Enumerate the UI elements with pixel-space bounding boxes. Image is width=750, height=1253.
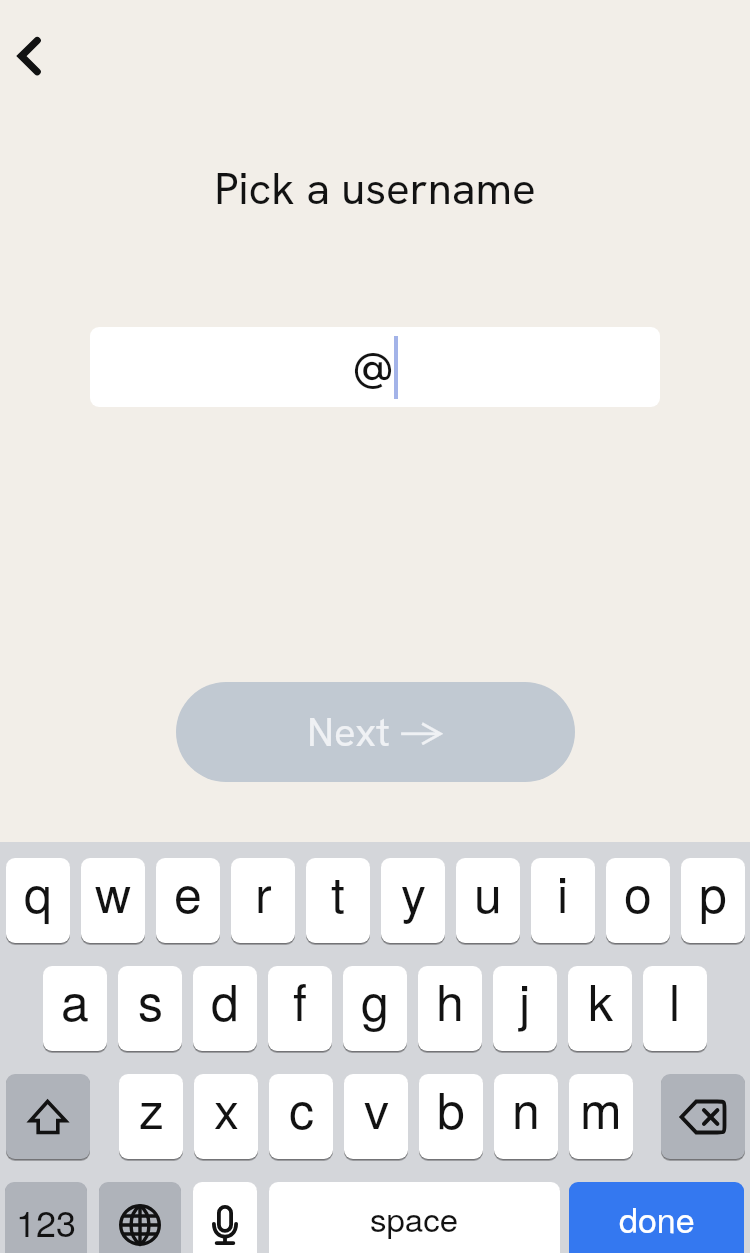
button[interactable]: u: [456, 858, 520, 943]
staticText: k: [588, 966, 613, 1036]
staticText: g: [361, 966, 389, 1036]
staticText: @: [352, 336, 394, 399]
other: Change keyboard: [119, 1204, 161, 1246]
staticText: space: [370, 1194, 459, 1241]
other: Backspace: [679, 1099, 727, 1135]
staticText: z: [139, 1074, 164, 1144]
button[interactable]: @: [90, 327, 660, 407]
button[interactable]: q: [6, 858, 70, 943]
staticText: u: [474, 858, 502, 928]
staticText: done: [619, 1194, 695, 1243]
button[interactable]: t: [306, 858, 370, 943]
staticText: v: [364, 1074, 389, 1144]
button[interactable]: d: [193, 966, 257, 1051]
button[interactable]: Back: [0, 0, 60, 112]
button[interactable]: k: [568, 966, 632, 1051]
staticText: y: [401, 858, 426, 928]
staticText: o: [624, 858, 652, 928]
button[interactable]: 123: [5, 1182, 87, 1253]
staticText: l: [669, 966, 681, 1036]
staticText: p: [699, 858, 727, 928]
button[interactable]: o: [606, 858, 670, 943]
button[interactable]: Change keyboard: [99, 1182, 181, 1253]
button[interactable]: s: [118, 966, 182, 1051]
staticText: Pick a username: [0, 160, 750, 217]
button[interactable]: n: [494, 1074, 558, 1159]
button[interactable]: Next →: [176, 682, 575, 782]
other: Voice input: [212, 1205, 238, 1245]
staticText: j: [519, 966, 531, 1036]
other: Shift: [28, 1099, 68, 1135]
staticText: h: [436, 966, 464, 1036]
button[interactable]: h: [418, 966, 482, 1051]
button[interactable]: done: [569, 1182, 744, 1253]
staticText: d: [211, 966, 239, 1036]
staticText: m: [580, 1074, 622, 1144]
button[interactable]: x: [194, 1074, 258, 1159]
button[interactable]: c: [269, 1074, 333, 1159]
button[interactable]: space: [269, 1182, 560, 1253]
staticText: s: [138, 966, 163, 1036]
staticText: i: [557, 858, 569, 928]
staticText: f: [293, 966, 307, 1036]
staticText: a: [61, 966, 89, 1036]
staticText: r: [255, 858, 272, 928]
staticText: w: [95, 858, 132, 928]
button[interactable]: r: [231, 858, 295, 943]
button[interactable]: y: [381, 858, 445, 943]
button[interactable]: b: [419, 1074, 483, 1159]
button[interactable]: g: [343, 966, 407, 1051]
button[interactable]: Shift: [6, 1074, 90, 1159]
staticText: 123: [16, 1196, 77, 1248]
staticText: Next →: [307, 706, 445, 758]
staticText: q: [24, 858, 52, 928]
staticText: t: [331, 858, 345, 928]
button[interactable]: Voice input: [193, 1182, 257, 1253]
button[interactable]: w: [81, 858, 145, 943]
button[interactable]: Backspace: [661, 1074, 745, 1159]
staticText: n: [512, 1074, 540, 1144]
button[interactable]: i: [531, 858, 595, 943]
button[interactable]: e: [156, 858, 220, 943]
button[interactable]: p: [681, 858, 745, 943]
button[interactable]: v: [344, 1074, 408, 1159]
staticText: c: [289, 1074, 314, 1144]
staticText: b: [437, 1074, 465, 1144]
staticText: e: [174, 858, 202, 928]
staticText: x: [214, 1074, 239, 1144]
button[interactable]: f: [268, 966, 332, 1051]
button[interactable]: l: [643, 966, 707, 1051]
button[interactable]: z: [119, 1074, 183, 1159]
button[interactable]: j: [493, 966, 557, 1051]
button[interactable]: m: [569, 1074, 633, 1159]
button[interactable]: a: [43, 966, 107, 1051]
